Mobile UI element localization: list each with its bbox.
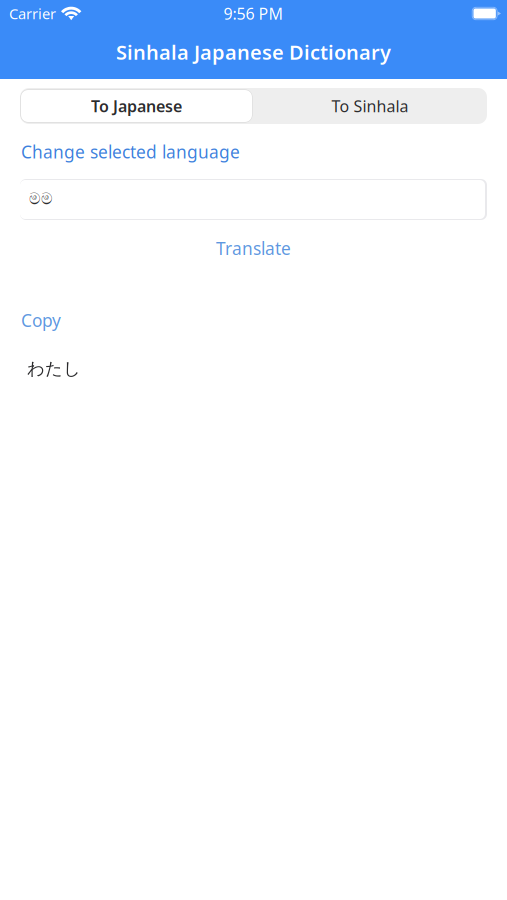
staticText: Change selected language bbox=[21, 140, 240, 163]
staticText: Carrier bbox=[9, 4, 56, 23]
button[interactable]: Change selected language bbox=[21, 142, 240, 162]
button[interactable]: To Sinhala bbox=[253, 88, 487, 124]
staticText: 9:56 PM bbox=[223, 3, 283, 24]
staticText: To Sinhala bbox=[331, 95, 408, 117]
staticText: To Japanese bbox=[91, 95, 182, 117]
button[interactable]: Sinhala text to translate bbox=[20, 179, 487, 220]
staticText: Copy bbox=[21, 309, 61, 332]
button[interactable]: Copy bbox=[21, 310, 61, 330]
button[interactable]: Translate bbox=[0, 238, 507, 258]
staticText: Translate bbox=[216, 237, 291, 260]
staticText: Sinhala Japanese Dictionary bbox=[116, 39, 391, 65]
staticText: わたし bbox=[27, 358, 81, 379]
staticText: මම bbox=[29, 192, 53, 207]
button[interactable]: To Japanese bbox=[20, 88, 253, 124]
